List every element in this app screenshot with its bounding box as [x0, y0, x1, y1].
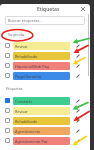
button[interactable]: Revisar [5, 106, 85, 115]
button[interactable]: Rehabilitado [5, 51, 85, 60]
button[interactable]: Agendamento [5, 126, 85, 135]
button[interactable]: Editar [73, 126, 82, 135]
staticText: Rehabilitado [15, 119, 38, 124]
staticText: Etiquetas [6, 86, 23, 91]
button[interactable]: Hipoteca/Medi Pag [5, 61, 85, 70]
staticText: Constatki [15, 99, 32, 104]
button[interactable]: Editar [73, 106, 82, 115]
button[interactable]: Editar [73, 136, 82, 145]
staticText: Hipoteca/Medi Pag [15, 64, 49, 69]
button[interactable]: Buscar etiquetas... [5, 16, 85, 25]
staticText: Etiquetas [37, 6, 60, 13]
button[interactable]: Editar [73, 51, 82, 60]
staticText: Agendamento Pac [15, 139, 48, 144]
staticText: Buscar etiquetas... [8, 18, 43, 23]
button[interactable]: Agendamento Pac [5, 136, 85, 145]
staticText: Pago/Garantía [15, 74, 41, 79]
staticText: Sugerida [8, 32, 24, 37]
staticText: Agendamento [15, 129, 41, 134]
button[interactable]: Constatki [5, 96, 85, 105]
button[interactable]: Cerrar [78, 4, 87, 13]
button[interactable]: Rehabilitado [5, 116, 85, 125]
staticText: Revisar [15, 109, 28, 114]
button[interactable]: Editar [73, 41, 82, 50]
button[interactable]: Editar [73, 116, 82, 125]
button[interactable]: Editar [73, 61, 82, 70]
button[interactable]: Revisar [5, 41, 85, 50]
staticText: Rehabilitado [15, 54, 38, 59]
button[interactable]: Pago/Garantía [5, 71, 85, 80]
button[interactable]: Editar [73, 96, 82, 105]
button[interactable]: Editar [73, 71, 82, 80]
staticText: Revisar [15, 44, 28, 49]
